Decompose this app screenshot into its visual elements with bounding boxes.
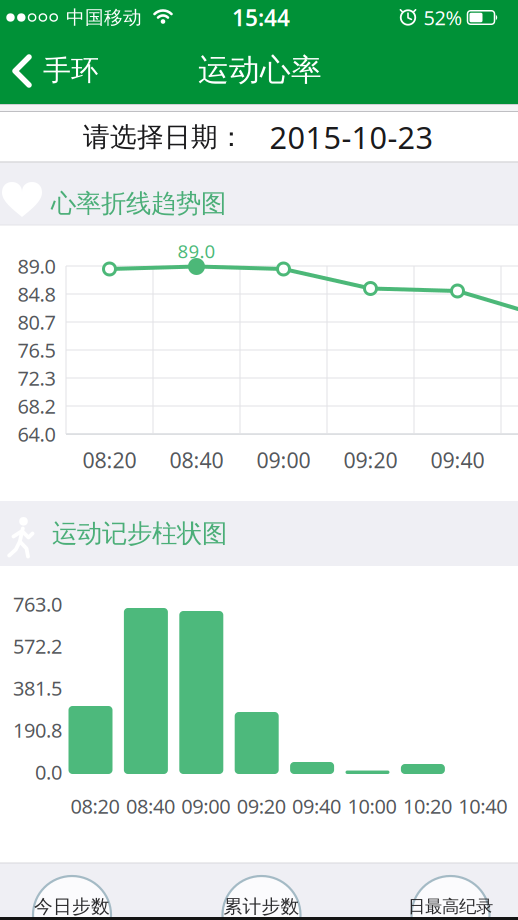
staticText: 64.0 [17, 421, 55, 447]
staticText: 心率折线趋势图 [51, 188, 226, 219]
staticText: 09:40 [292, 793, 341, 819]
staticText: 10:00 [347, 793, 396, 819]
staticText: 10:40 [458, 793, 507, 819]
staticText: 72.3 [17, 365, 55, 391]
staticText: 80.7 [17, 309, 55, 335]
staticText: 15:44 [232, 2, 290, 32]
staticText: 08:40 [169, 446, 223, 474]
staticText: 68.2 [17, 393, 55, 419]
staticText: 09:00 [256, 446, 310, 474]
staticText: 手环 [43, 53, 99, 88]
button[interactable]: 返回手环 [0, 45, 110, 97]
staticText: 08:20 [70, 793, 119, 819]
staticText: 运动心率 [198, 51, 322, 89]
staticText: 累计步数 [223, 895, 299, 918]
staticText: 09:40 [430, 446, 484, 474]
staticText: 0.0 [35, 759, 62, 785]
staticText: 请选择日期： [83, 121, 245, 153]
staticText: 10:20 [403, 793, 452, 819]
staticText: 中国移动 [66, 6, 142, 29]
staticText: 76.5 [17, 337, 55, 363]
staticText: 运动记步柱状图 [52, 518, 227, 549]
staticText: 09:20 [343, 446, 397, 474]
button[interactable]: 请选择日期： [0, 112, 518, 162]
staticText: 190.8 [13, 717, 62, 743]
staticText: 52% [423, 4, 462, 31]
button[interactable]: 今日步数 [33, 876, 111, 920]
staticText: 2015-10-23 [269, 117, 433, 157]
staticText: 89.0 [17, 253, 55, 279]
staticText: 89.0 [177, 239, 215, 263]
button[interactable]: 累计步数 [222, 876, 300, 920]
staticText: 今日步数 [34, 895, 110, 918]
staticText: 08:20 [82, 446, 136, 474]
staticText: 08:40 [126, 793, 175, 819]
staticText: 09:00 [181, 793, 230, 819]
staticText: 84.8 [17, 281, 55, 307]
staticText: 日最高纪录 [408, 896, 493, 917]
staticText: 381.5 [13, 675, 62, 701]
button[interactable]: 日最高纪录 [411, 876, 489, 920]
staticText: 09:20 [237, 793, 286, 819]
staticText: 572.2 [13, 633, 62, 659]
staticText: 763.0 [13, 591, 62, 617]
